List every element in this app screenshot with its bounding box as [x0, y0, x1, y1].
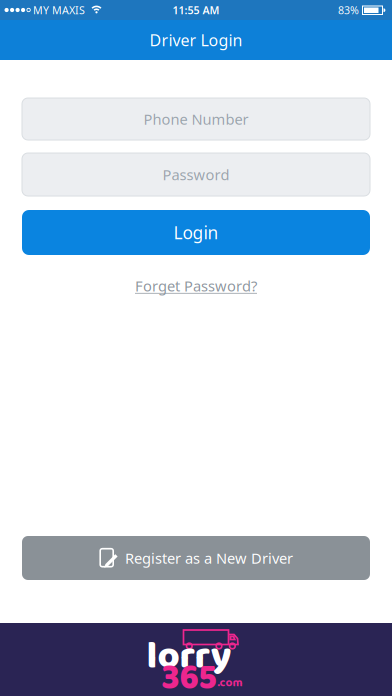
staticText: Driver Login: [149, 29, 242, 51]
button[interactable]: Register as a New Driver: [22, 536, 370, 580]
button[interactable]: Login: [22, 210, 370, 255]
button[interactable]: Phone Number: [22, 98, 370, 140]
staticText: Forget Password?: [135, 276, 257, 295]
staticText: Password: [162, 165, 229, 184]
staticText: Phone Number: [143, 109, 248, 129]
staticText: 365: [161, 651, 216, 696]
staticText: Register as a New Driver: [125, 548, 293, 568]
staticText: MY MAXIS: [33, 3, 85, 17]
staticText: Login: [173, 221, 218, 244]
button[interactable]: Password: [22, 153, 370, 196]
button[interactable]: Forget Password?: [135, 276, 257, 295]
staticText: 11:55 AM: [172, 3, 219, 17]
staticText: 83%: [338, 3, 359, 17]
staticText: lorry: [146, 626, 231, 687]
staticText: .com: [217, 673, 242, 693]
